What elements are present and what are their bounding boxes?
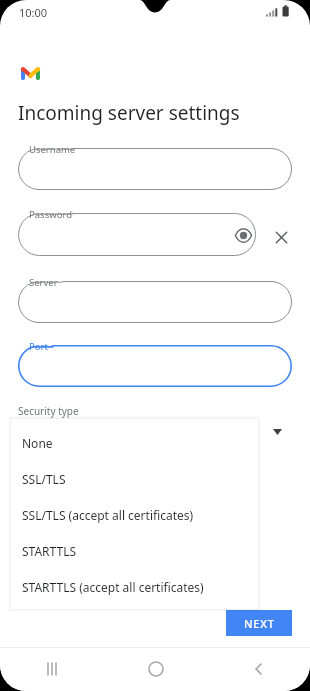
staticText: Incoming server settings: [18, 100, 240, 126]
staticText: SSL/TLS: [22, 471, 66, 487]
staticText: NEXT: [244, 616, 275, 631]
staticText: STARTTLS (accept all certificates): [22, 579, 204, 595]
button[interactable]: Port: [18, 345, 292, 387]
staticText: Port: [29, 340, 48, 353]
staticText: STARTTLS: [22, 543, 77, 559]
staticText: Password: [29, 208, 72, 221]
button[interactable]: Clear: [270, 226, 292, 248]
staticText: 10:00: [19, 5, 48, 20]
staticText: Username: [29, 143, 76, 156]
button[interactable]: STARTTLS: [11, 533, 258, 569]
button[interactable]: None: [11, 425, 258, 461]
button[interactable]: STARTTLS (accept all certificates): [11, 569, 258, 605]
button[interactable]: Server: [18, 281, 292, 323]
button[interactable]: Back: [207, 647, 310, 691]
button[interactable]: Show password: [231, 223, 255, 247]
button[interactable]: Password: [18, 213, 256, 256]
staticText: Server: [29, 276, 58, 289]
button[interactable]: SSL/TLS (accept all certificates): [11, 497, 258, 533]
button[interactable]: Open security type dropdown: [268, 423, 286, 441]
button[interactable]: Username: [18, 148, 292, 190]
button[interactable]: NEXT: [226, 610, 292, 636]
staticText: None: [22, 435, 53, 451]
button[interactable]: Home: [104, 647, 207, 691]
button[interactable]: SSL/TLS: [11, 461, 258, 497]
button[interactable]: Recent apps: [0, 647, 104, 691]
staticText: SSL/TLS (accept all certificates): [22, 507, 194, 523]
staticText: Security type: [18, 404, 79, 418]
